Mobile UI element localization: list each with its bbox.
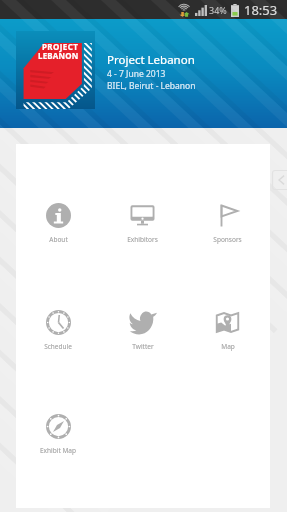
button[interactable]: Sponsors [185, 203, 270, 244]
button[interactable]: Schedule [16, 310, 100, 351]
staticText: 18:53 [244, 1, 278, 19]
staticText: BIEL, Beirut - Lebanon [107, 80, 196, 92]
staticText: Map [221, 342, 235, 351]
staticText: Project Lebanon [107, 52, 195, 68]
staticText: Schedule [44, 342, 72, 351]
staticText: PROJECT [42, 41, 79, 52]
staticText: Twitter [132, 342, 154, 351]
staticText: About [49, 235, 68, 244]
button[interactable]: Open side drawer [272, 170, 287, 190]
staticText: LEBANON [38, 50, 79, 61]
button[interactable]: Map [185, 310, 270, 351]
button[interactable]: Exhibitors [100, 203, 185, 244]
staticText: 34% [209, 4, 227, 16]
staticText: Exhibitors [127, 235, 158, 244]
staticText: Sponsors [213, 235, 242, 244]
staticText: Exhibit Map [40, 446, 76, 455]
button[interactable]: Exhibit Map [16, 414, 100, 455]
button[interactable]: About [16, 203, 100, 244]
staticText: 4 - 7 June 2013 [107, 68, 166, 80]
button[interactable]: Twitter [100, 310, 185, 351]
